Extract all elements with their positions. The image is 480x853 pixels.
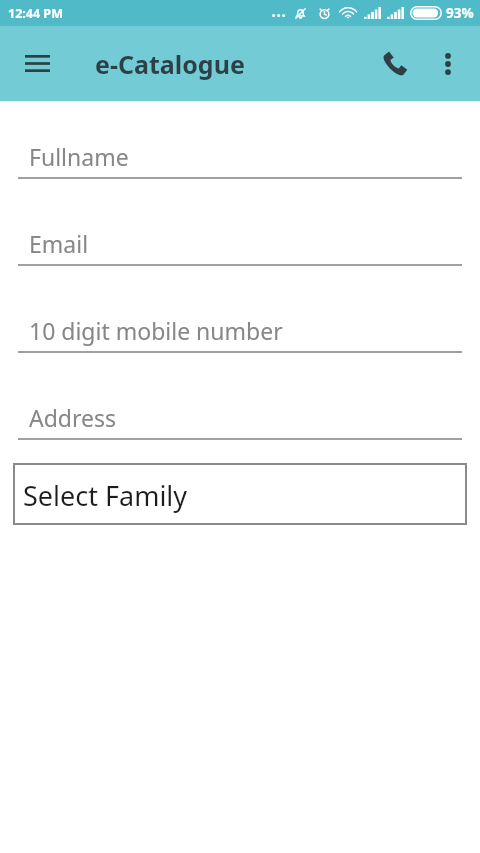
button[interactable]: Call	[367, 40, 415, 88]
button[interactable]: Select Family	[13, 463, 467, 525]
button[interactable]: More options	[428, 44, 468, 84]
button[interactable]: Email	[0, 228, 480, 266]
staticText: 10 digit mobile number	[29, 315, 283, 346]
staticText: Email	[29, 228, 89, 259]
button[interactable]: Menu	[14, 40, 61, 87]
staticText: 93%	[446, 4, 474, 22]
staticText: Fullname	[29, 141, 129, 172]
staticText: Select Family	[23, 477, 188, 514]
button[interactable]: 10 digit mobile number	[0, 315, 480, 353]
staticText: e-Catalogue	[95, 47, 245, 81]
button[interactable]: Fullname	[0, 141, 480, 179]
staticText: 12:44 PM	[8, 5, 63, 22]
staticText: Address	[29, 402, 117, 433]
button[interactable]: Address	[0, 402, 480, 440]
